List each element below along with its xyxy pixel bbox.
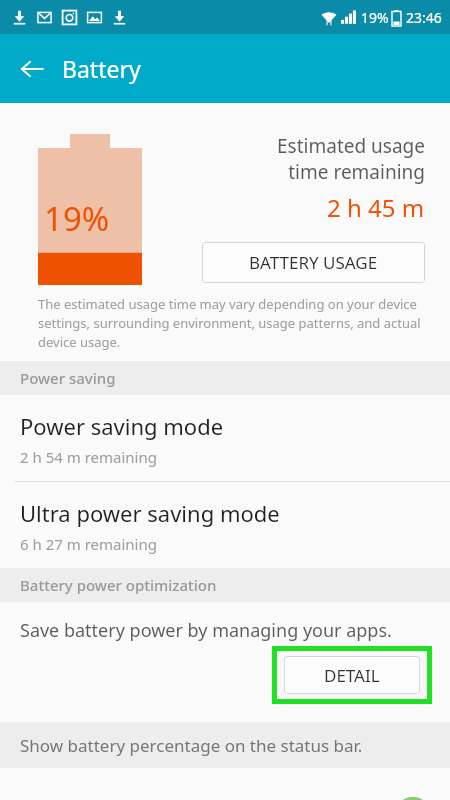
staticText: BATTERY USAGE (249, 251, 378, 274)
staticText: Power saving (20, 368, 116, 388)
staticText: Estimated usage time remaining (277, 133, 425, 184)
staticText: Ultra power saving mode (20, 498, 280, 528)
button[interactable]: BATTERY USAGE (202, 242, 425, 283)
button[interactable]: DETAIL (284, 656, 420, 694)
staticText: Battery (62, 53, 141, 84)
staticText: DETAIL (324, 664, 380, 687)
staticText: Show battery percentage on the status ba… (20, 734, 363, 757)
button[interactable]: Ultra power saving mode (0, 482, 450, 568)
staticText: 19% (44, 196, 110, 241)
staticText: Battery power optimization (20, 575, 217, 595)
button[interactable]: Power saving mode (0, 395, 450, 481)
staticText: 23:46 (406, 8, 442, 27)
button[interactable]: Back (10, 47, 54, 91)
staticText: 2 h 45 m (327, 191, 425, 224)
staticText: 6 h 27 m remaining (20, 534, 157, 554)
staticText: 2 h 54 m remaining (20, 447, 157, 467)
staticText: 19% (361, 8, 389, 27)
staticText: Save battery power by managing your apps… (20, 618, 392, 643)
button[interactable] (0, 768, 450, 800)
staticText: Power saving mode (20, 411, 224, 441)
staticText: The estimated usage time may vary depend… (38, 295, 421, 351)
